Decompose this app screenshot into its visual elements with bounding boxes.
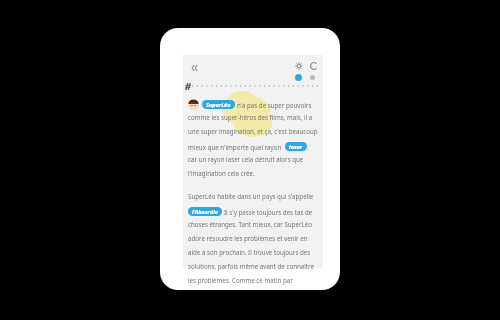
staticText: . [307, 143, 309, 151]
staticText: solutions, parfois même avant de connaît… [188, 262, 315, 270]
staticText: n'a pas de super pouvoirs [237, 101, 312, 109]
staticText: adore résoudre les problèmes et venir en [188, 234, 308, 242]
staticText: laser [289, 143, 303, 151]
button[interactable]: SuperLéo [202, 100, 235, 109]
staticText: comme les super-héros des films, mais, i… [188, 113, 313, 121]
staticText: aide à son prochain. Il trouve toujours … [188, 248, 311, 256]
button[interactable]: Page one [293, 72, 304, 83]
button[interactable]: Bookmark [182, 81, 193, 92]
staticText: choses étranges. Tant mieux, car SuperLé… [188, 220, 313, 228]
staticText: Il s'y passe toujours des tas de [224, 208, 313, 216]
staticText: l'imagination cela crée. [188, 169, 255, 177]
staticText: une super imagination, et ça, c'est beau… [188, 127, 318, 135]
staticText: mieux que n'importe quel rayon [188, 143, 282, 151]
staticText: car un rayon laser cela détruit alors qu… [188, 155, 304, 163]
button[interactable]: Dark mode [307, 59, 320, 72]
staticText: SuperLéo [206, 101, 231, 109]
button[interactable]: Settings [292, 59, 305, 72]
button[interactable]: laser [285, 142, 307, 151]
staticText: SuperLéo habite dans un pays qui s'appel… [188, 192, 314, 200]
staticText: les problèmes. Comme ce matin par [188, 276, 293, 284]
button[interactable]: Back [186, 60, 202, 76]
staticText: l'Absurdie [192, 208, 218, 216]
button[interactable]: Page two [308, 73, 317, 82]
button[interactable]: l'Absurdie [188, 207, 222, 216]
